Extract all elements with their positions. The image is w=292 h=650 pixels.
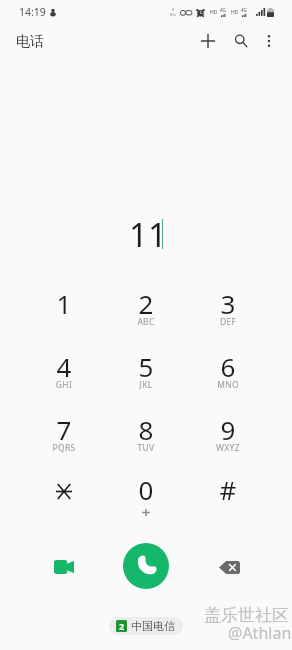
- staticText: 中国电信: [131, 619, 175, 633]
- button[interactable]: Backspace: [207, 545, 251, 589]
- staticText: MNO: [208, 379, 248, 391]
- staticText: JKL: [126, 379, 166, 391]
- staticText: ABC: [126, 316, 166, 328]
- button[interactable]: Dial 6: [187, 329, 269, 392]
- staticText: @Athlan: [228, 622, 292, 644]
- staticText: GHI: [44, 379, 84, 391]
- button[interactable]: Dial 5: [105, 329, 187, 392]
- staticText: 9: [208, 412, 248, 447]
- staticText: 0: [126, 472, 166, 507]
- staticText: 3: [208, 286, 248, 321]
- button[interactable]: 2: [109, 617, 183, 635]
- staticText: HD: [231, 9, 239, 16]
- staticText: 11: [118, 212, 178, 257]
- button[interactable]: Dial 8: [105, 392, 187, 455]
- staticText: #: [208, 472, 248, 507]
- staticText: 4: [44, 349, 84, 384]
- staticText: 盖乐世社区: [204, 605, 289, 626]
- button[interactable]: Video call: [42, 545, 86, 589]
- staticText: 电话: [16, 33, 44, 51]
- staticText: 5: [126, 349, 166, 384]
- button[interactable]: Dial #: [187, 452, 269, 515]
- button[interactable]: Dial 3: [187, 266, 269, 329]
- button[interactable]: Dial *: [23, 452, 105, 515]
- staticText: 2: [119, 620, 125, 632]
- button[interactable]: Search: [223, 23, 258, 58]
- staticText: 4G: [220, 7, 226, 13]
- button[interactable]: Dial 1: [23, 266, 105, 329]
- staticText: K/s: [170, 12, 176, 17]
- staticText: 4G: [241, 7, 247, 13]
- staticText: 0: [172, 7, 175, 12]
- button[interactable]: Dial 0: [105, 452, 187, 515]
- staticText: 1: [44, 286, 84, 321]
- button[interactable]: Dial 2: [105, 266, 187, 329]
- button[interactable]: Dial 4: [23, 329, 105, 392]
- button[interactable]: Call: [123, 543, 169, 589]
- button[interactable]: Dial 9: [187, 392, 269, 455]
- staticText: HD: [210, 9, 218, 16]
- staticText: TUV: [126, 442, 166, 454]
- staticText: 2: [126, 286, 166, 321]
- button[interactable]: Dial 7: [23, 392, 105, 455]
- button[interactable]: Add contact: [190, 23, 225, 58]
- staticText: PQRS: [44, 442, 84, 454]
- staticText: 14:19: [19, 5, 46, 19]
- staticText: DEF: [208, 316, 248, 328]
- staticText: 6: [208, 349, 248, 384]
- staticText: 7: [44, 412, 84, 447]
- button[interactable]: More options: [251, 23, 286, 58]
- staticText: 8: [126, 412, 166, 447]
- staticText: WXYZ: [208, 442, 248, 454]
